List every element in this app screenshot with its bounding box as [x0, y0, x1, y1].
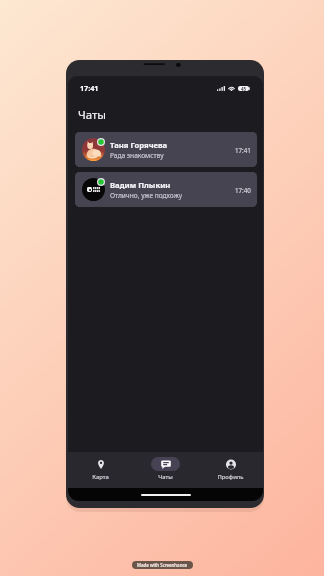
staticText: 17:40 [235, 186, 251, 194]
staticText: Вадим Плыкин [110, 180, 171, 190]
button[interactable]: Made with Screenhance [132, 561, 193, 569]
button[interactable]: Map tab [68, 452, 133, 488]
staticText: 45 [241, 86, 247, 91]
button[interactable]: Таня Горячева [75, 132, 257, 167]
staticText: Рада знакомству [110, 151, 164, 160]
staticText: Таня Горячева [110, 140, 168, 150]
button[interactable]: Chats tab [133, 452, 198, 488]
staticText: Отлично, уже подхожу [110, 191, 182, 200]
staticText: Карта [92, 473, 109, 481]
staticText: 17:41 [235, 146, 251, 154]
staticText: Made with Screenhance [137, 562, 188, 568]
staticText: Чаты [158, 473, 173, 481]
staticText: Чаты [78, 107, 107, 123]
button[interactable]: Вадим Плыкин [75, 172, 257, 207]
staticText: Профиль [217, 473, 244, 481]
staticText: 17:41 [80, 83, 99, 93]
button[interactable]: Profile tab [198, 452, 263, 488]
